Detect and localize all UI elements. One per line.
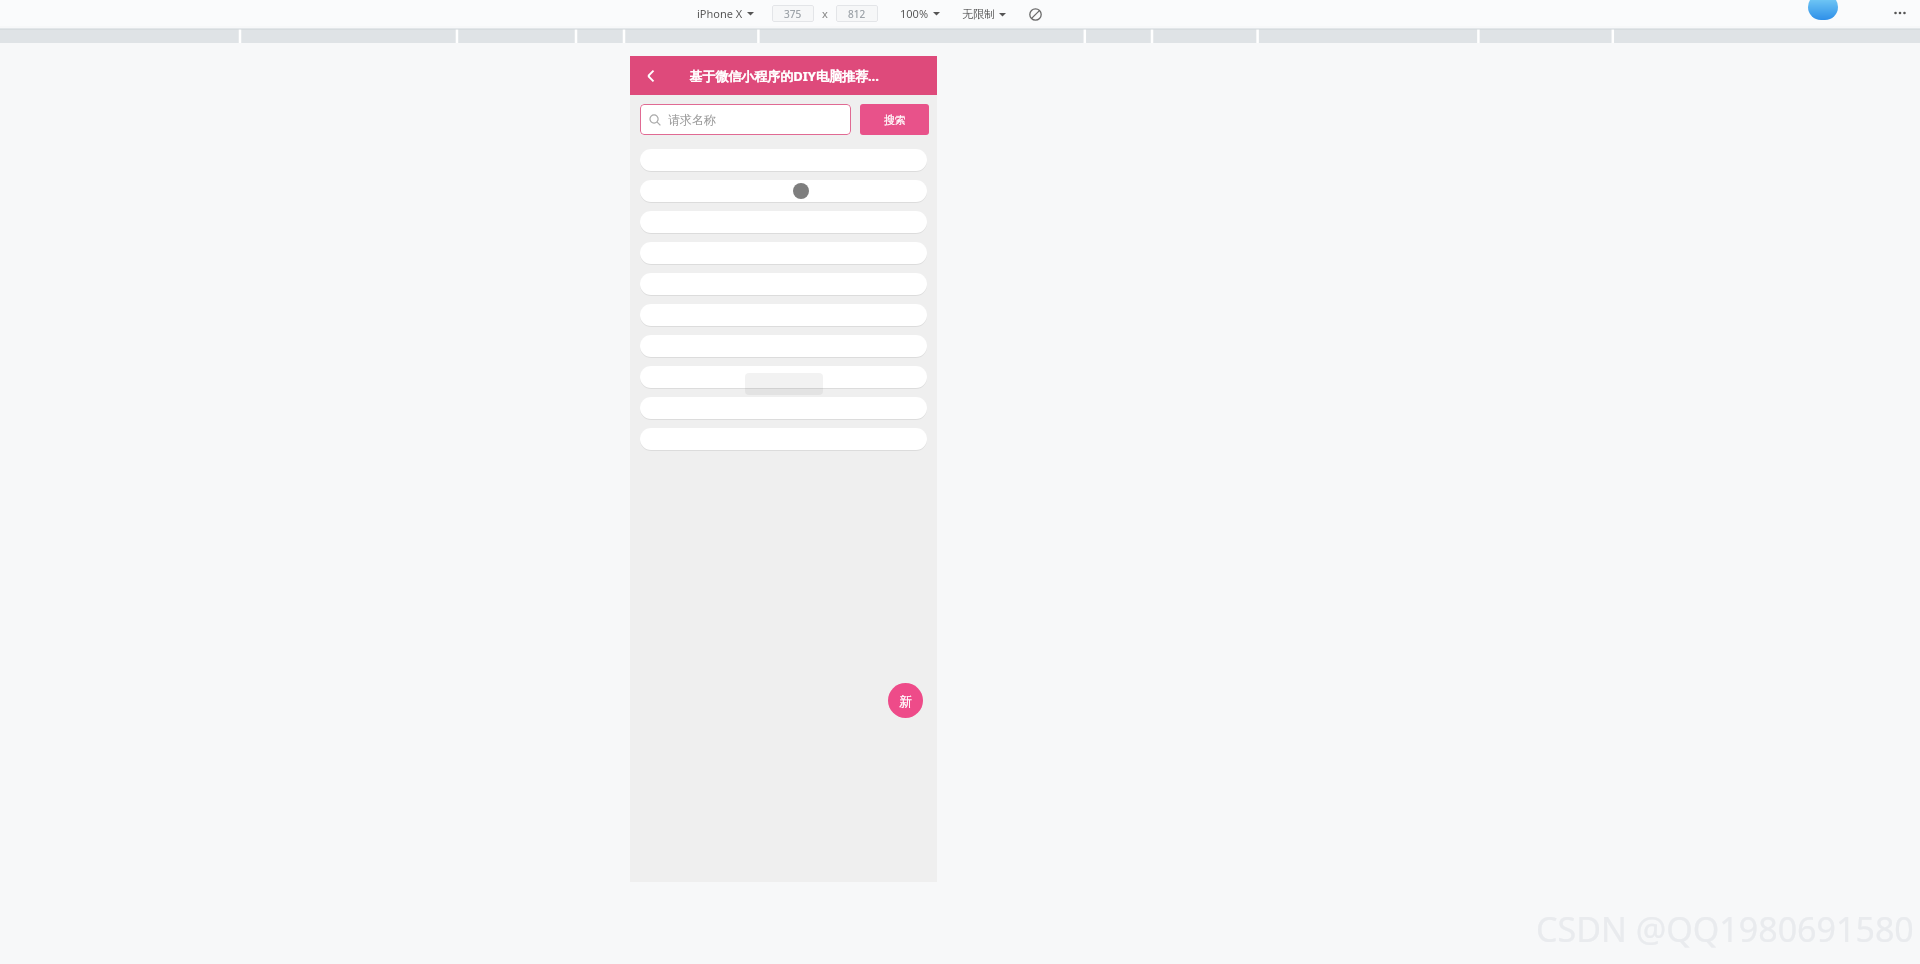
button[interactable]: Back: [636, 61, 666, 91]
staticText: 基于微信小程序的DIY电脑推荐...: [689, 67, 879, 85]
staticText: 812: [848, 7, 866, 21]
button[interactable]: Disable throttling: [1026, 5, 1044, 23]
staticText: iPhone X: [697, 6, 743, 21]
button[interactable]: [640, 180, 927, 202]
staticText: x: [822, 6, 828, 21]
staticText: 新: [899, 693, 912, 709]
button[interactable]: 无限制: [958, 5, 1010, 23]
button[interactable]: Account: [1808, 0, 1838, 20]
button[interactable]: iPhone X: [693, 4, 758, 23]
button[interactable]: 搜索: [860, 104, 929, 135]
button[interactable]: 请求名称: [640, 104, 851, 135]
button[interactable]: 375: [772, 5, 814, 22]
staticText: 375: [784, 7, 802, 21]
staticText: 搜索: [884, 113, 906, 127]
staticText: CSDN @QQ1980691580: [1536, 906, 1914, 952]
staticText: 100%: [900, 6, 929, 21]
button[interactable]: [640, 366, 927, 388]
staticText: 无限制: [962, 7, 995, 21]
button[interactable]: 新: [888, 683, 923, 718]
button[interactable]: More options: [1890, 3, 1910, 23]
button[interactable]: 100%: [896, 4, 944, 23]
staticText: 请求名称: [668, 112, 716, 127]
button[interactable]: 812: [836, 5, 878, 22]
